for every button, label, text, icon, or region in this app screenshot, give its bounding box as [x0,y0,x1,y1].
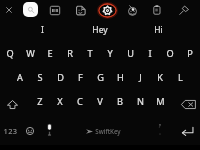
staticText: H [117,71,124,84]
button[interactable]: M [150,89,170,113]
button[interactable]: S [30,65,50,89]
staticText: Q [6,47,14,60]
staticText: Hi [154,24,163,36]
staticText: I [148,47,152,60]
button[interactable]: Hey [71,19,129,40]
button[interactable]: Backspace [176,93,200,115]
staticText: I [41,24,44,36]
button[interactable]: Enter [177,121,197,141]
staticText: C [77,95,83,108]
button[interactable]: K [150,65,170,89]
staticText: P [187,47,193,60]
button[interactable]: H [110,65,130,89]
button[interactable]: N [130,89,150,113]
button[interactable]: V [90,89,110,113]
button[interactable]: Shift [0,93,24,115]
button[interactable]: C [70,89,90,113]
button[interactable]: D [50,65,70,89]
button[interactable]: O [160,41,180,65]
staticText: J [139,71,142,84]
button[interactable]: Q [0,41,20,65]
staticText: U [127,47,134,60]
staticText: B [117,95,123,108]
staticText: W [26,47,35,60]
staticText: T [87,47,93,60]
button[interactable]: Clipboard [147,0,167,20]
staticText: M [156,95,165,108]
button[interactable]: B [110,89,130,113]
staticText: A [17,71,23,84]
button[interactable]: Close [0,0,19,20]
button[interactable]: 123 [0,118,21,144]
staticText: Z [37,95,43,108]
staticText: F [78,71,83,84]
staticText: Y [107,47,113,60]
button[interactable]: Pin toolbar [174,0,194,20]
button[interactable]: I [13,19,71,40]
button[interactable]: Emoji search [122,0,142,20]
button[interactable]: Z [30,89,50,113]
button[interactable] [149,116,171,142]
staticText: V [97,95,103,108]
staticText: X [57,95,63,108]
button[interactable]: Settings [97,1,117,19]
button[interactable]: G [90,65,110,89]
staticText: R [67,47,73,60]
button[interactable]: A [10,65,30,89]
button[interactable]: F [70,65,90,89]
staticText: N [137,95,144,108]
button[interactable]: E [40,41,60,65]
button[interactable]: Y [100,41,120,65]
staticText: D [57,71,64,84]
staticText: O [166,47,174,60]
button[interactable]: Stickers [70,0,90,20]
staticText: K [157,71,163,84]
button[interactable]: SwiftKey [58,118,148,144]
button[interactable]: R [60,41,80,65]
button[interactable]: I [140,41,160,65]
staticText: E [47,47,53,60]
staticText: S [37,71,43,84]
staticText: Hey [92,24,108,36]
button[interactable]: T [80,41,100,65]
staticText: 123 [3,126,18,136]
staticText: L [178,71,183,84]
button[interactable]: Search [23,2,38,17]
button[interactable]: U [120,41,140,65]
button[interactable]: L [170,65,190,89]
button[interactable]: Emoji [20,121,40,141]
button[interactable]: Hi [129,19,187,40]
button[interactable]: Voice input [39,119,59,141]
button[interactable]: X [50,89,70,113]
button[interactable]: GIF [45,1,65,19]
button[interactable]: P [180,41,200,65]
staticText: SwiftKey [95,127,121,135]
button[interactable]: J [130,65,150,89]
button[interactable]: W [20,41,40,65]
staticText: G [97,71,104,84]
